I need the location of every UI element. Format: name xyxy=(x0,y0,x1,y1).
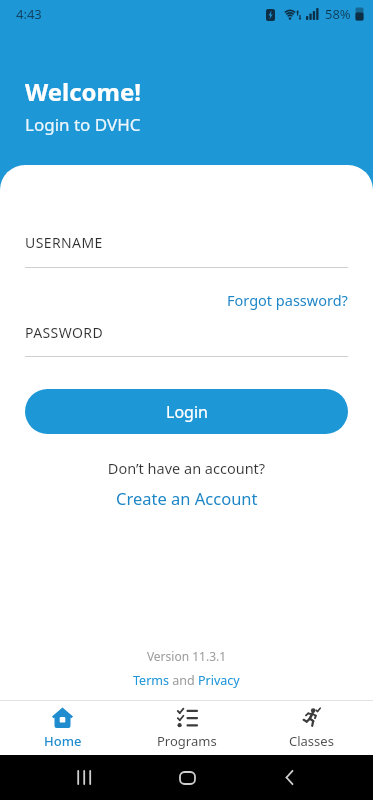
staticText: USERNAME xyxy=(25,233,103,252)
button[interactable] xyxy=(157,755,217,800)
staticText: Classes xyxy=(289,732,334,750)
staticText: Home xyxy=(44,732,82,750)
button[interactable]: Forgot password? xyxy=(227,290,348,310)
staticText: Login to DVHC xyxy=(25,113,141,136)
button[interactable]: Home xyxy=(0,701,125,755)
button[interactable]: Terms xyxy=(133,672,169,689)
staticText: Create an Account xyxy=(116,487,258,509)
staticText: Version 11.3.1 xyxy=(0,648,373,664)
staticText: 4:43 xyxy=(16,5,42,23)
staticText: Welcome! xyxy=(25,75,142,108)
staticText: Privacy xyxy=(198,672,240,689)
staticText: Don’t have an account? xyxy=(25,458,348,478)
button[interactable]: Create an Account xyxy=(116,487,258,509)
button[interactable]: Programs xyxy=(125,701,249,755)
button[interactable]: Classes xyxy=(249,701,373,755)
staticText: Terms xyxy=(133,672,169,689)
staticText: PASSWORD xyxy=(25,323,104,342)
staticText: and xyxy=(169,672,198,689)
staticText: 58% xyxy=(325,5,351,23)
button[interactable] xyxy=(55,755,115,800)
button[interactable]: Login xyxy=(25,389,348,434)
button[interactable]: Privacy xyxy=(198,672,240,689)
button[interactable] xyxy=(259,755,319,800)
staticText: Programs xyxy=(157,732,217,750)
staticText: Forgot password? xyxy=(227,290,348,310)
staticText: Login xyxy=(166,401,208,423)
